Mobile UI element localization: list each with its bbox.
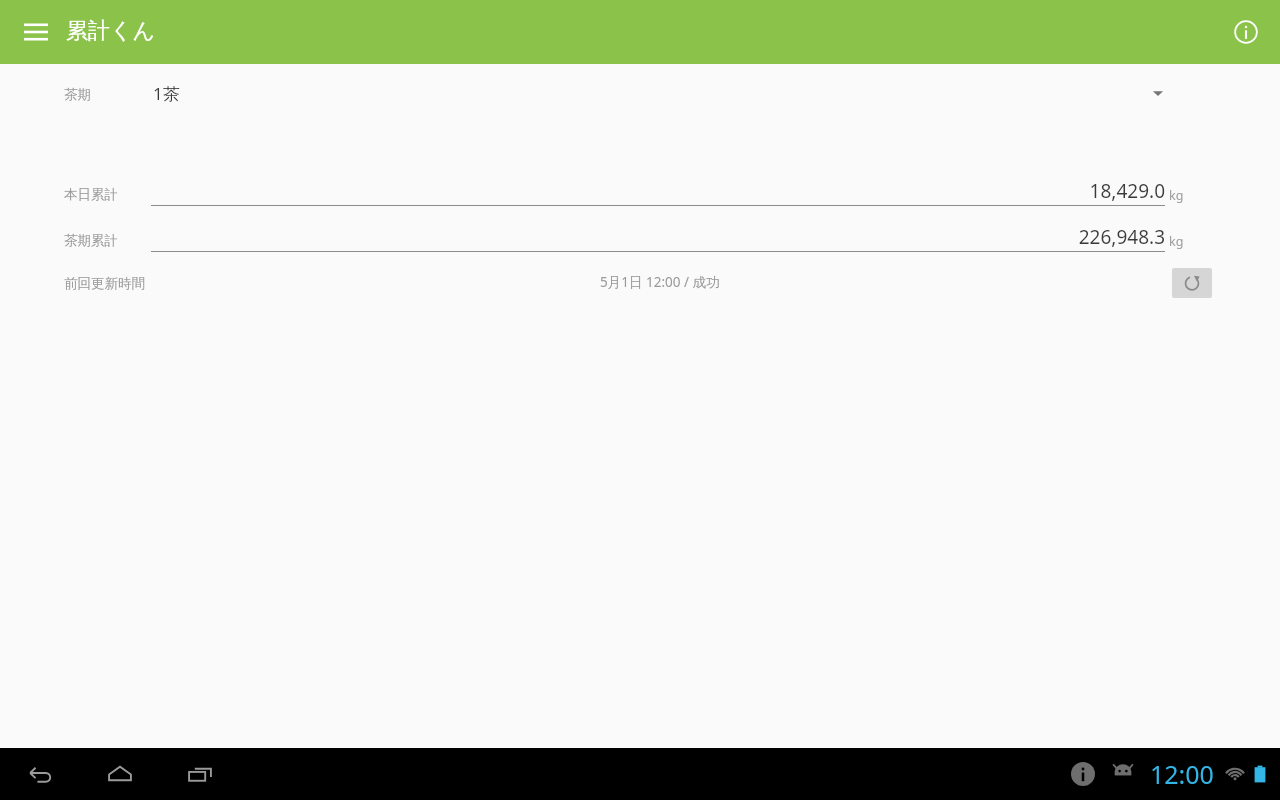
staticText: 226,948.3 <box>1078 224 1165 250</box>
button[interactable]: Recent apps <box>174 748 226 800</box>
button[interactable]: 18,429.0 <box>151 175 1165 207</box>
staticText: 12:00 <box>1150 757 1214 791</box>
staticText: 茶期 <box>64 86 91 103</box>
button[interactable]: 1茶 <box>150 71 1171 115</box>
staticText: kg <box>1169 233 1184 250</box>
staticText: kg <box>1169 187 1184 204</box>
button[interactable]: Menu <box>14 10 58 54</box>
staticText: 18,429.0 <box>1089 178 1165 204</box>
button[interactable]: Notification info <box>1066 757 1100 791</box>
staticText: 前回更新時間 <box>64 275 145 292</box>
button[interactable]: 226,948.3 <box>151 221 1165 253</box>
staticText: 5月1日 12:00 / 成功 <box>600 273 720 291</box>
staticText: 1茶 <box>153 82 180 105</box>
button[interactable]: Info <box>1222 8 1270 56</box>
staticText: 本日累計 <box>64 186 118 203</box>
staticText: 茶期累計 <box>64 232 118 249</box>
button[interactable]: Back <box>14 748 66 800</box>
staticText: 累計くん <box>66 17 156 45</box>
button[interactable]: Refresh <box>1172 268 1212 298</box>
button[interactable]: Home <box>94 748 146 800</box>
